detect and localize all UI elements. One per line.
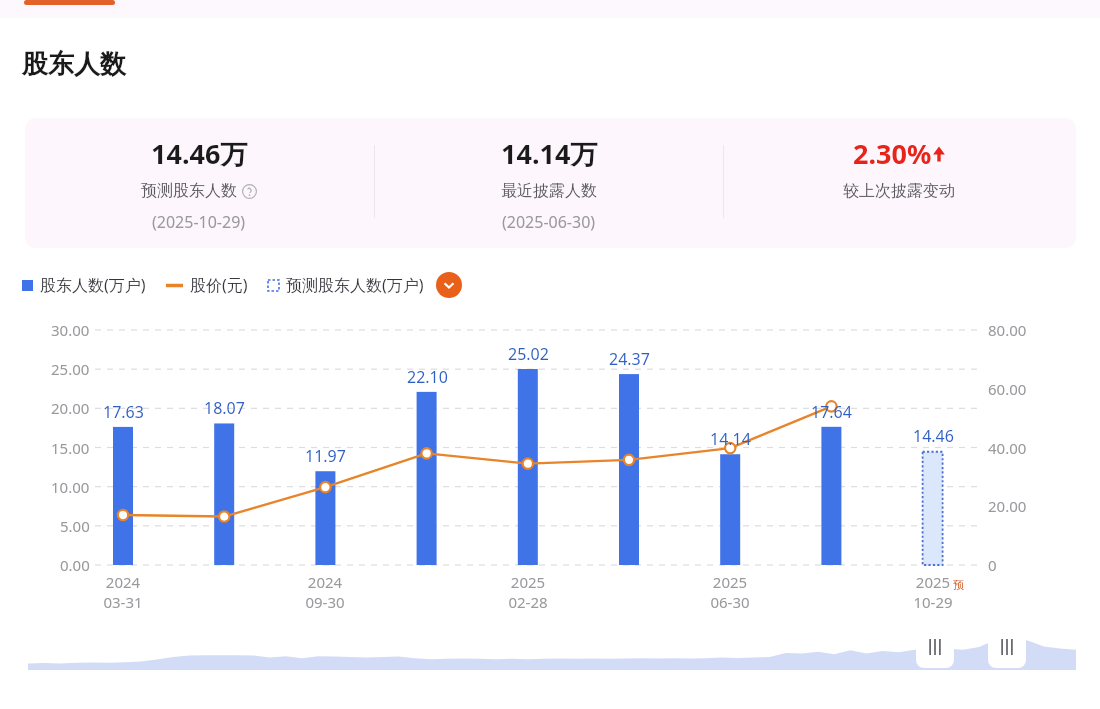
staticText: 25.00	[51, 359, 90, 379]
staticText: 20.00	[988, 496, 1027, 516]
button[interactable]: 右侧滑块	[988, 626, 1026, 668]
staticText: 2024 03-31	[103, 572, 143, 612]
staticText: 较上次披露变动	[843, 181, 955, 201]
staticText: 25.02	[508, 343, 549, 365]
staticText: 14.14	[710, 428, 751, 450]
staticText: 14.46	[913, 425, 954, 447]
button[interactable]: 股价(元)	[166, 274, 248, 296]
staticText: 40.00	[988, 438, 1027, 458]
staticText: (2025-06-30)	[502, 211, 596, 233]
staticText: (2025-10-29)	[152, 211, 246, 233]
other: 帮助	[242, 184, 257, 199]
button[interactable]: 预测股东人数(万户)	[268, 274, 424, 296]
staticText: 22.10	[407, 366, 448, 388]
staticText: 17.64	[811, 401, 852, 423]
staticText: 2.30%	[853, 135, 932, 172]
staticText: 30.00	[51, 320, 90, 340]
staticText: 24.37	[609, 348, 650, 370]
button[interactable]: 14.46万	[25, 118, 1076, 248]
staticText: 最近披露人数	[501, 181, 597, 201]
staticText: 11.97	[305, 445, 346, 467]
staticText: 股东人数(万户)	[40, 274, 146, 296]
staticText: 2025 06-30	[710, 572, 750, 612]
staticText: 预	[953, 578, 964, 592]
button[interactable]: 左侧滑块	[916, 626, 954, 668]
staticText: 17.63	[103, 401, 144, 423]
staticText: 股东人数	[22, 48, 126, 81]
staticText: 14.46万	[151, 135, 248, 172]
staticText: 0.00	[60, 555, 90, 575]
staticText: 60.00	[988, 379, 1027, 399]
staticText: 预测股东人数(万户)	[286, 274, 424, 296]
staticText: 预测股东人数	[141, 181, 237, 201]
staticText: 5.00	[60, 516, 90, 536]
button[interactable]	[24, 0, 115, 5]
staticText: 2025 02-28	[508, 572, 548, 612]
staticText: 15.00	[51, 438, 90, 458]
staticText: 2024 09-30	[305, 572, 345, 612]
staticText: 10.00	[51, 477, 90, 497]
staticText: 2025 10-29	[913, 572, 953, 612]
staticText: 18.07	[204, 397, 245, 419]
staticText: 80.00	[988, 320, 1027, 340]
staticText: 14.14万	[501, 135, 598, 172]
button[interactable]: 股东人数(万户)	[22, 274, 146, 296]
staticText: 股价(元)	[190, 274, 248, 296]
button[interactable]: 展开	[436, 272, 462, 298]
staticText: 0	[988, 555, 997, 575]
staticText: 20.00	[51, 398, 90, 418]
